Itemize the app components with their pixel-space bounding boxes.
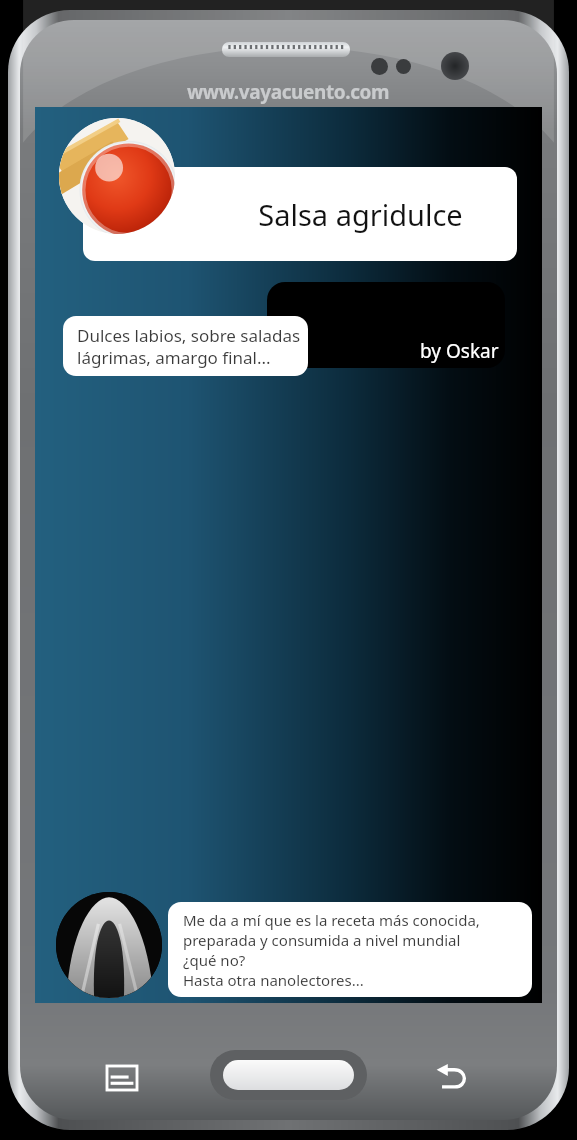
- button[interactable]: Atrás: [428, 1054, 474, 1100]
- button[interactable]: Foto de la receta: [59, 118, 175, 234]
- button[interactable]: Inicio: [210, 1050, 367, 1100]
- button[interactable]: Me da a mí que es la receta más conocida…: [168, 902, 532, 997]
- staticText: by Oskar: [420, 338, 499, 364]
- staticText: Dulces labios, sobre saladas lágrimas, a…: [77, 324, 301, 369]
- staticText: Salsa agridulce: [258, 195, 463, 234]
- button[interactable]: Foto de perfil del autor: [56, 892, 162, 998]
- button[interactable]: Menú: [100, 1056, 144, 1100]
- staticText: Me da a mí que es la receta más conocida…: [183, 910, 480, 990]
- button[interactable]: Salsa agridulce: [83, 167, 517, 261]
- staticText: www.vayacuento.com: [187, 79, 390, 105]
- button[interactable]: Dulces labios, sobre saladas lágrimas, a…: [63, 316, 308, 376]
